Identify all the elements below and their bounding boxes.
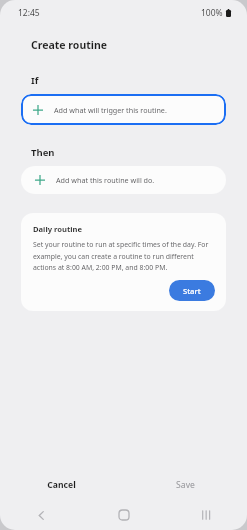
- staticText: 12:45: [18, 7, 40, 19]
- staticText: Cancel: [47, 479, 76, 491]
- button[interactable]: Back: [0, 500, 83, 530]
- staticText: Start: [183, 286, 201, 296]
- button[interactable]: Home: [83, 500, 165, 530]
- staticText: Add what will trigger this routine.: [54, 105, 167, 115]
- staticText: If: [31, 74, 39, 87]
- button[interactable]: Start: [169, 280, 215, 301]
- staticText: Add what this routine will do.: [56, 175, 155, 185]
- button[interactable]: Add what will trigger this routine.: [21, 94, 226, 125]
- button[interactable]: Recent apps: [165, 500, 247, 530]
- staticText: Then: [31, 146, 55, 159]
- staticText: Daily routine: [33, 224, 82, 234]
- staticText: Create routine: [31, 38, 107, 52]
- staticText: Save: [176, 479, 195, 491]
- staticText: Set your routine to run at specific time…: [33, 240, 215, 272]
- button[interactable]: Cancel: [0, 470, 123, 500]
- button[interactable]: Save: [123, 470, 247, 500]
- staticText: 100%: [201, 7, 223, 19]
- button[interactable]: Add what this routine will do.: [21, 166, 226, 194]
